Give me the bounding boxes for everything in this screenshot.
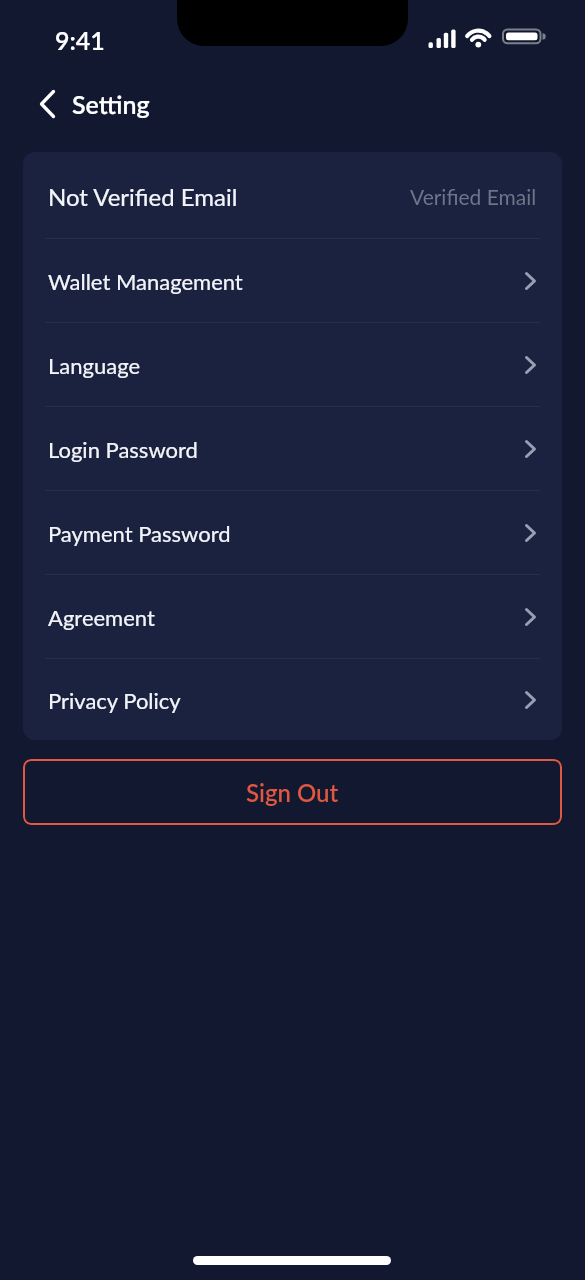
button[interactable]: Wallet Management	[23, 239, 562, 322]
button[interactable]: Agreement	[23, 575, 562, 658]
button[interactable]: Language	[23, 323, 562, 406]
staticText: Not Verified Email	[48, 182, 238, 211]
staticText: Payment Password	[48, 520, 231, 546]
staticText: Agreement	[48, 604, 155, 630]
staticText: Verified Email	[410, 184, 537, 209]
staticText: Wallet Management	[48, 268, 243, 294]
staticText: Setting	[72, 89, 150, 119]
button[interactable]: Privacy Policy	[23, 659, 562, 740]
staticText: Privacy Policy	[48, 687, 181, 713]
staticText: 9:41	[55, 25, 105, 55]
button[interactable]: Not Verified Email	[23, 155, 562, 238]
button[interactable]: Sign Out	[23, 759, 562, 825]
button[interactable]: Payment Password	[23, 491, 562, 574]
staticText: Sign Out	[246, 778, 339, 807]
staticText: Language	[48, 352, 141, 378]
button[interactable]	[26, 82, 70, 126]
button[interactable]: Login Password	[23, 407, 562, 490]
staticText: Login Password	[48, 436, 198, 462]
